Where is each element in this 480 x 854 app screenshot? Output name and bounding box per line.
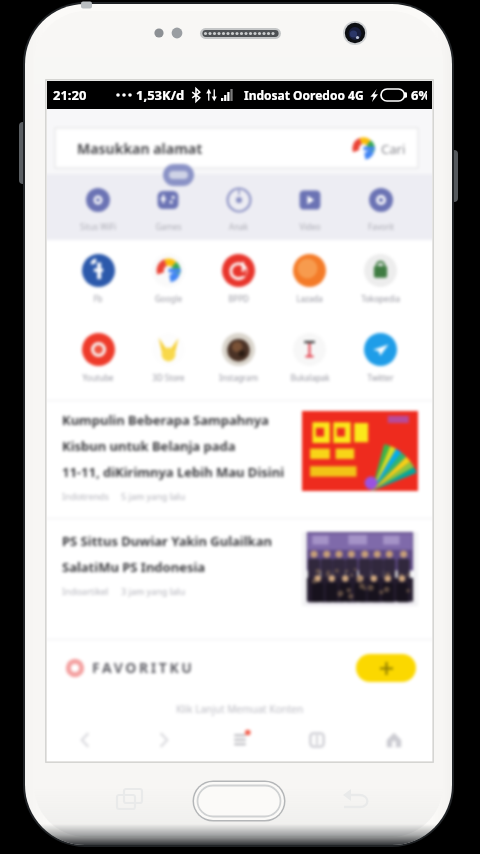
button[interactable]: Games [133,174,203,240]
staticText: 3 jam yang lalu [121,585,185,597]
button[interactable]: 3D Store [133,333,203,383]
button[interactable]: Favorit [345,174,416,240]
staticText: Indoartikel [62,585,109,597]
staticText: Instagram [219,372,258,383]
staticText: 11-11, diKirimnya Lebih Mau Disini [62,463,285,481]
button[interactable]: Video [274,174,345,240]
staticText: FAVORITKU [92,658,195,677]
button[interactable]: Masukkan alamat [55,128,418,168]
staticText: Lazada [296,293,323,304]
button[interactable]: Bukalapak [274,333,345,383]
button[interactable]: Google [133,254,203,304]
staticText: Situs WiFi [80,221,116,232]
staticText: Masukkan alamat [77,139,203,158]
staticText: SalatiMu PS Indonesia [62,558,206,576]
button[interactable]: Home [355,719,432,761]
staticText: Indosat Ooredoo 4G [244,87,364,103]
button[interactable]: PS Sittus Duwiar Yakin Gulailkan [47,519,432,639]
button[interactable]: Situs WiFi [63,174,133,240]
button[interactable]: Kumpulin Beberapa Sampahnya [47,401,432,518]
staticText: Klik Lanjut Memuat Konten [47,702,432,716]
button[interactable]: Youtube [63,333,133,383]
staticText: 6% [411,86,427,104]
button[interactable]: BPPD [203,254,274,304]
button[interactable]: Twitter [345,333,416,383]
staticText: Anak [229,221,248,232]
button[interactable]: Tabs [278,719,355,761]
staticText: Video [299,221,321,232]
staticText: BPPD [228,293,249,304]
staticText: Kisbun untuk Belanja pada [62,437,236,455]
button[interactable]: Instagram [203,333,274,383]
staticText: Indotrends [62,490,109,502]
button[interactable]: Anak [203,174,274,240]
button[interactable]: FAVORITKU [47,640,432,695]
staticText: Favorit [368,221,394,232]
staticText: 3D Store [152,372,185,383]
staticText: Cari [381,140,406,158]
button[interactable]: Fb [63,254,133,304]
staticText: Google [155,293,182,304]
staticText: 5 jam yang lalu [121,490,185,502]
staticText: 1,53K/d [136,86,185,104]
staticText: Games [155,221,182,232]
staticText: Twitter [367,372,394,383]
staticText: Youtube [82,372,114,383]
staticText: PS Sittus Duwiar Yakin Gulailkan [62,532,272,550]
staticText: Tokopedia [361,293,400,304]
button[interactable]: Tambah favorit [356,654,416,682]
button[interactable]: Tokopedia [345,254,416,304]
button[interactable]: Lazada [274,254,345,304]
staticText: Kumpulin Beberapa Sampahnya [62,411,269,429]
staticText: 21:20 [53,86,87,104]
staticText: Fb [93,293,103,304]
button[interactable]: Menu [201,719,278,761]
staticText: Bukalapak [290,372,330,383]
